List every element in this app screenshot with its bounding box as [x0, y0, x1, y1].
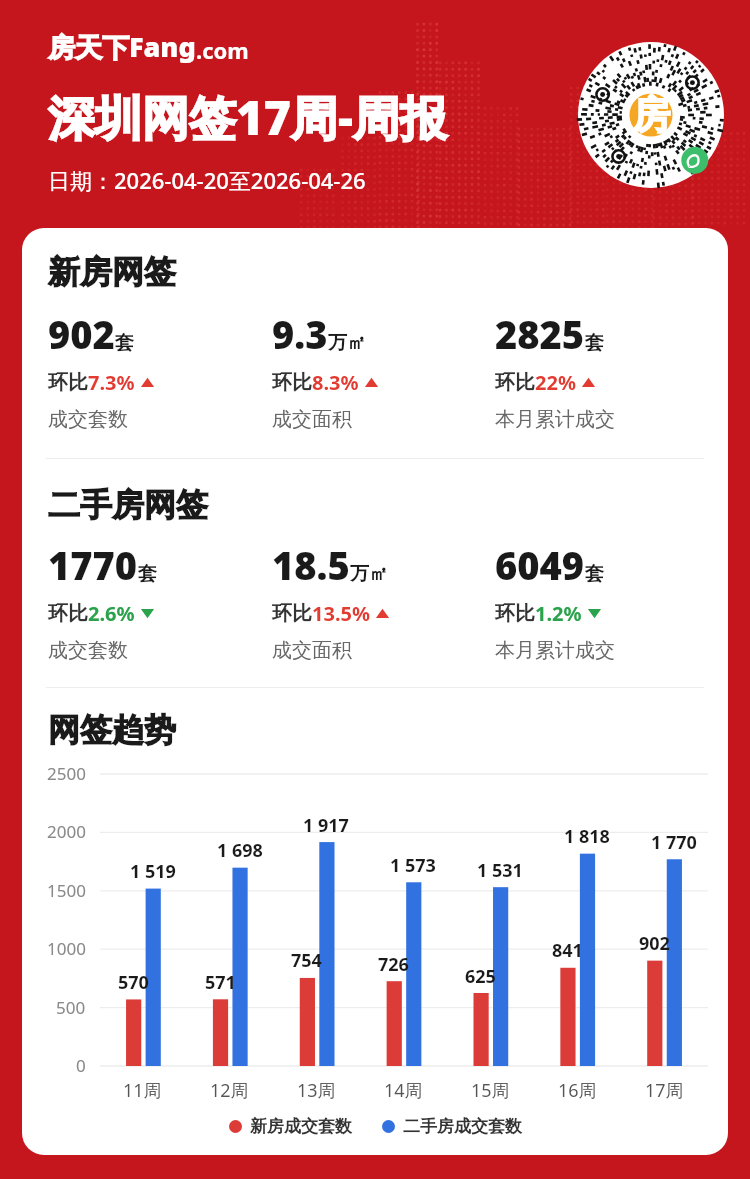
staticText: 1 519 [130, 859, 176, 884]
staticText: 1500 [47, 879, 86, 902]
staticText: Fang [129, 28, 196, 65]
staticText: 套 [585, 562, 604, 586]
button[interactable]: 房天下 [48, 28, 249, 65]
staticText: 6049 [495, 539, 585, 591]
staticText: 13.5% [312, 600, 370, 627]
staticText: 15周 [471, 1078, 510, 1103]
staticText: 2500 [47, 762, 86, 785]
staticText: 环比 [48, 601, 88, 626]
button[interactable]: 2825 [495, 308, 718, 432]
button[interactable]: 1770 [48, 539, 272, 663]
staticText: 500 [56, 996, 86, 1019]
staticText: 套 [115, 331, 134, 355]
button[interactable]: 902 [48, 308, 272, 432]
button[interactable]: 9.3 [272, 308, 495, 432]
staticText: 环比 [272, 601, 312, 626]
staticText: 本月累计成交 [495, 407, 615, 432]
staticText: 房天下 [48, 31, 129, 65]
staticText: 8.3% [312, 369, 359, 396]
staticText: 1 770 [651, 830, 697, 855]
staticText: 1 818 [564, 824, 610, 849]
staticText: 2.6% [88, 600, 135, 627]
staticText: 环比 [272, 370, 312, 395]
staticText: 9.3 [272, 308, 328, 360]
staticText: 成交套数 [48, 638, 128, 663]
staticText: 1.2% [535, 600, 582, 627]
staticText: 2000 [47, 820, 86, 843]
staticText: 754 [291, 948, 322, 973]
staticText: 18.5 [272, 539, 350, 591]
staticText: 成交面积 [272, 407, 352, 432]
staticText: 1000 [47, 937, 86, 960]
staticText: 11周 [123, 1078, 162, 1103]
staticText: 841 [552, 938, 583, 963]
staticText: 环比 [495, 370, 535, 395]
button[interactable]: 二手房成交套数 [382, 1116, 522, 1137]
staticText: 7.3% [88, 369, 135, 396]
staticText: 902 [48, 308, 115, 360]
staticText: 新房成交套数 [250, 1116, 352, 1137]
staticText: 二手房成交套数 [403, 1116, 522, 1137]
staticText: 深圳网签17周-周报 [48, 85, 448, 149]
staticText: 1 531 [477, 858, 523, 883]
staticText: 成交面积 [272, 638, 352, 663]
staticText: 1 698 [217, 838, 263, 863]
staticText: 环比 [495, 601, 535, 626]
staticText: 1 573 [390, 853, 436, 878]
staticText: 570 [118, 970, 149, 995]
staticText: 1770 [48, 539, 138, 591]
staticText: 房 [632, 91, 670, 139]
staticText: .com [196, 35, 249, 65]
staticText: 16周 [558, 1078, 597, 1103]
button[interactable]: 新房成交套数 [229, 1116, 352, 1137]
staticText: 0 [76, 1054, 86, 1077]
staticText: 万㎡ [350, 562, 388, 586]
staticText: 新房网签 [48, 252, 176, 292]
staticText: 1 917 [303, 813, 349, 838]
staticText: 套 [138, 562, 157, 586]
staticText: 本月累计成交 [495, 638, 615, 663]
staticText: 日期：2026-04-20至2026-04-26 [48, 165, 366, 195]
staticText: 环比 [48, 370, 88, 395]
staticText: 17周 [645, 1078, 684, 1103]
staticText: 13周 [297, 1078, 336, 1103]
staticText: 726 [378, 952, 409, 977]
staticText: 套 [585, 331, 604, 355]
staticText: 网签趋势 [48, 710, 176, 750]
button[interactable]: 18.5 [272, 539, 495, 663]
staticText: 12周 [210, 1078, 249, 1103]
staticText: 成交套数 [48, 407, 128, 432]
staticText: 625 [465, 964, 496, 989]
staticText: 22% [535, 369, 576, 396]
staticText: 571 [205, 970, 236, 995]
button[interactable]: 6049 [495, 539, 718, 663]
button[interactable]: 扫描二维码关注小程序 [578, 42, 724, 188]
staticText: 14周 [384, 1078, 423, 1103]
staticText: 902 [639, 931, 670, 956]
staticText: 二手房网签 [48, 485, 208, 525]
staticText: 2825 [495, 308, 585, 360]
staticText: 万㎡ [328, 331, 366, 355]
